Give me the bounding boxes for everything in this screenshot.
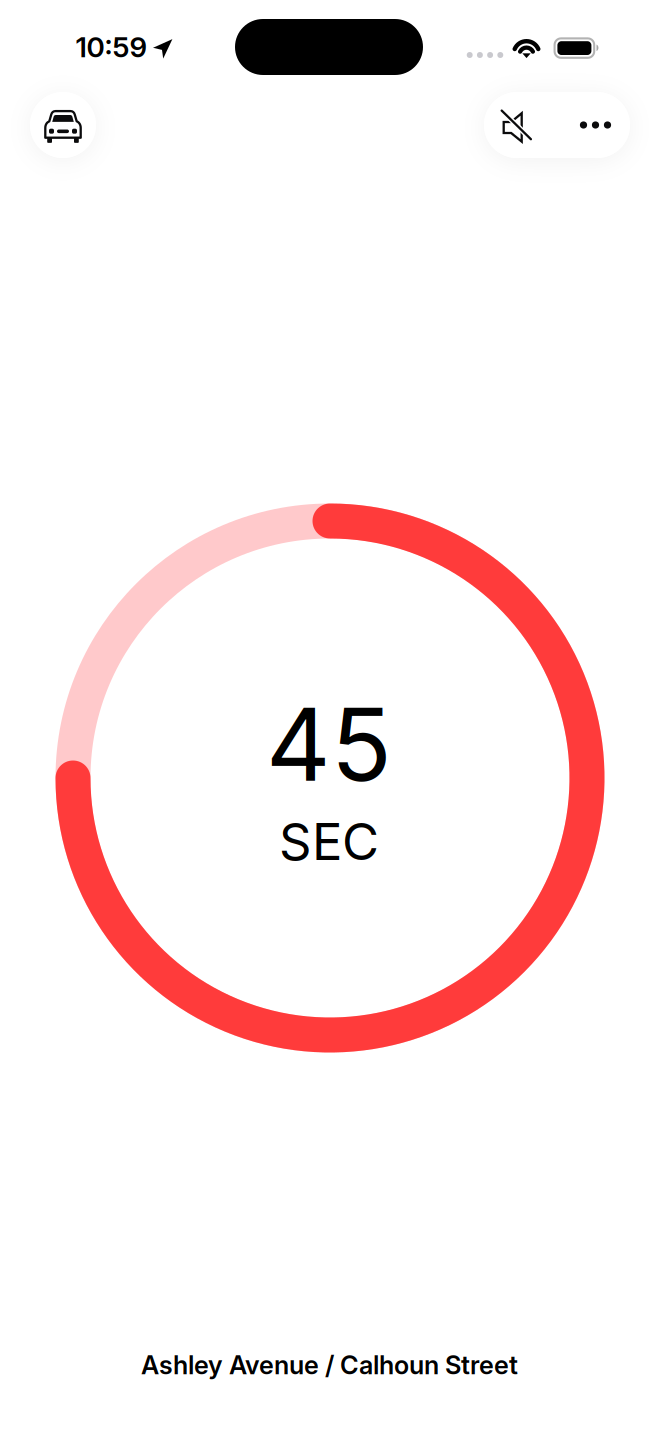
staticText: 45 bbox=[266, 684, 392, 805]
button[interactable]: More options bbox=[549, 92, 630, 158]
staticText: 10:59 bbox=[75, 30, 147, 64]
button[interactable]: Vehicle bbox=[30, 92, 96, 158]
button[interactable]: Mute bbox=[484, 92, 549, 158]
staticText: Ashley Avenue / Calhoun Street bbox=[141, 1350, 518, 1380]
staticText: SEC bbox=[279, 811, 379, 872]
